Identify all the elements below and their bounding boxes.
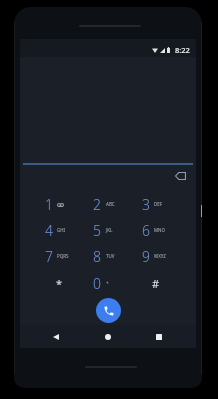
button[interactable] [34, 243, 82, 269]
staticText: + [106, 280, 109, 286]
staticText: TUV [106, 253, 115, 259]
button[interactable]: Back [45, 326, 67, 348]
button[interactable] [34, 191, 82, 217]
staticText: 8:22 [175, 45, 190, 55]
button[interactable]: Home [97, 326, 119, 348]
staticText: 7 [45, 247, 53, 266]
staticText: GHI [57, 227, 66, 233]
button[interactable] [83, 243, 131, 269]
button[interactable] [132, 191, 180, 217]
button[interactable] [132, 217, 180, 243]
staticText: MNO [154, 227, 166, 233]
button[interactable] [83, 270, 131, 296]
staticText: WXYZ [154, 253, 166, 259]
staticText: 9 [142, 247, 150, 266]
button[interactable] [34, 270, 82, 296]
staticText: ABC [106, 201, 115, 207]
button[interactable] [83, 217, 131, 243]
staticText: DEF [154, 201, 163, 207]
staticText: # [152, 276, 160, 291]
staticText: JKL [106, 227, 113, 233]
staticText: 6 [142, 221, 150, 240]
button[interactable] [83, 191, 131, 217]
staticText: 3 [142, 195, 150, 214]
button[interactable] [34, 217, 82, 243]
staticText: * [56, 276, 63, 291]
staticText: 5 [93, 221, 101, 240]
staticText: 2 [93, 195, 101, 214]
button[interactable] [132, 270, 180, 296]
staticText: 1 [45, 195, 53, 214]
button[interactable] [132, 243, 180, 269]
button[interactable]: Recent apps [148, 326, 170, 348]
button[interactable]: Call [96, 298, 121, 323]
staticText: 0 [93, 274, 101, 293]
staticText: 4 [45, 221, 53, 240]
staticText: 8 [93, 247, 101, 266]
staticText: PQRS [57, 253, 69, 259]
button[interactable]: Backspace [168, 164, 192, 188]
